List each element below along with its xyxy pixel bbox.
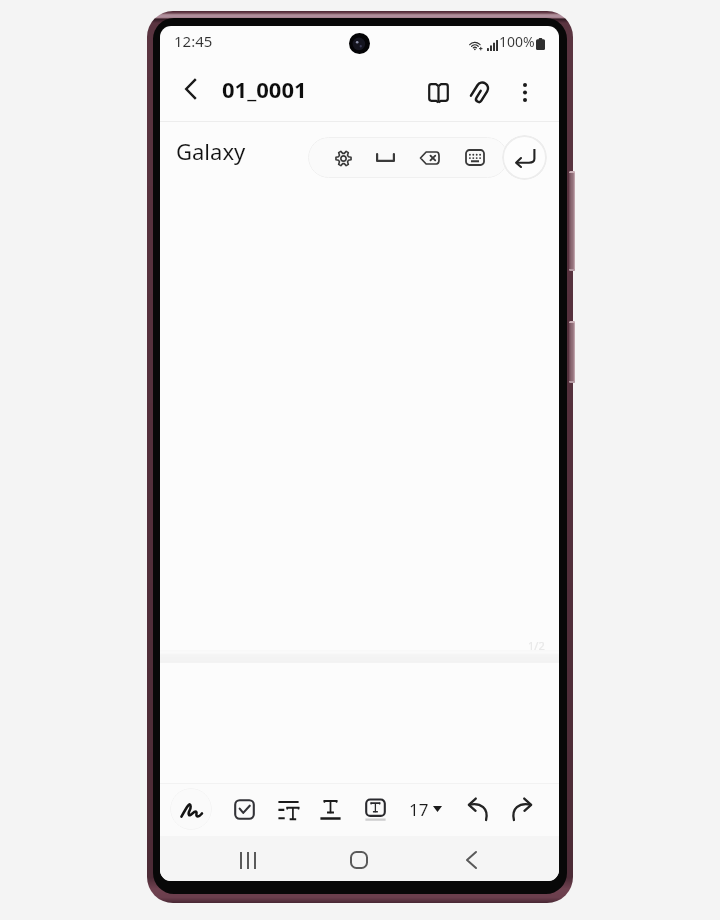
button[interactable]: Back [449, 838, 493, 881]
button[interactable]: Keyboard settings [328, 143, 358, 173]
button[interactable]: Reading mode [418, 72, 458, 112]
staticText: Galaxy [176, 136, 246, 166]
button[interactable]: Enter [502, 135, 547, 180]
button[interactable]: Show keyboard [458, 141, 492, 174]
button[interactable]: Space [369, 143, 401, 173]
button[interactable]: Text box [358, 792, 392, 826]
button[interactable]: 17 [406, 792, 445, 826]
button[interactable]: Back [173, 71, 209, 107]
button[interactable]: More options [505, 72, 545, 112]
button[interactable]: Recents [226, 838, 270, 881]
button[interactable]: Text style [313, 792, 347, 826]
button[interactable]: Backspace [412, 142, 446, 173]
staticText: 01_0001 [222, 74, 307, 104]
staticText: 100% [499, 32, 535, 51]
button[interactable]: Home [337, 838, 381, 881]
staticText: 1/2 [528, 638, 545, 653]
button[interactable]: Checklist [227, 792, 261, 826]
button[interactable]: Paragraph style [271, 792, 305, 826]
button[interactable]: Redo [504, 792, 538, 826]
staticText: 12:45 [174, 31, 213, 51]
button[interactable]: Handwriting [170, 788, 212, 830]
button[interactable]: Undo [461, 792, 495, 826]
button[interactable]: Attach [460, 72, 500, 112]
staticText: 17 [409, 798, 429, 821]
